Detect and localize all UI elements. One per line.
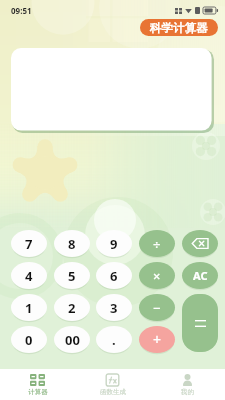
- staticText: +: [153, 330, 162, 349]
- staticText: 9: [110, 235, 118, 253]
- button[interactable]: 3: [96, 294, 132, 321]
- staticText: 00: [65, 331, 80, 349]
- staticText: 8: [68, 235, 76, 253]
- staticText: 科学计算器: [150, 21, 208, 35]
- staticText: 0: [25, 331, 33, 349]
- button[interactable]: [11, 48, 214, 133]
- staticText: 6: [110, 267, 118, 285]
- button[interactable]: 9: [96, 230, 132, 257]
- button[interactable]: 0: [11, 326, 47, 353]
- staticText: −: [153, 299, 161, 317]
- staticText: 我的: [181, 388, 194, 396]
- staticText: ÷: [153, 235, 161, 253]
- staticText: 5: [68, 267, 76, 285]
- button[interactable]: AC: [182, 262, 218, 289]
- staticText: 7: [25, 235, 33, 253]
- button[interactable]: ÷: [139, 230, 175, 257]
- staticText: 1: [25, 299, 33, 317]
- staticText: .: [112, 331, 116, 349]
- button[interactable]: 5: [54, 262, 90, 289]
- staticText: 4: [25, 267, 33, 285]
- staticText: 函数生成: [100, 388, 126, 396]
- button[interactable]: .: [96, 326, 132, 353]
- button[interactable]: Delete: [182, 230, 218, 257]
- button[interactable]: 6: [96, 262, 132, 289]
- button[interactable]: 2: [54, 294, 90, 321]
- button[interactable]: ×: [139, 262, 175, 289]
- button[interactable]: 7: [11, 230, 47, 257]
- button[interactable]: Equals: [182, 294, 218, 352]
- staticText: ×: [153, 267, 161, 285]
- button[interactable]: 我的: [150, 369, 225, 400]
- button[interactable]: +: [139, 326, 175, 353]
- button[interactable]: 计算器: [0, 369, 75, 400]
- button[interactable]: 8: [54, 230, 90, 257]
- staticText: 3: [110, 299, 118, 317]
- staticText: 2: [68, 299, 76, 317]
- button[interactable]: 4: [11, 262, 47, 289]
- button[interactable]: 1: [11, 294, 47, 321]
- staticText: 计算器: [28, 388, 48, 396]
- button[interactable]: 科学计算器: [140, 19, 218, 36]
- staticText: AC: [193, 268, 208, 283]
- button[interactable]: −: [139, 294, 175, 321]
- button[interactable]: 00: [54, 326, 90, 353]
- staticText: 09:51: [11, 5, 32, 16]
- button[interactable]: 函数生成: [75, 369, 150, 400]
